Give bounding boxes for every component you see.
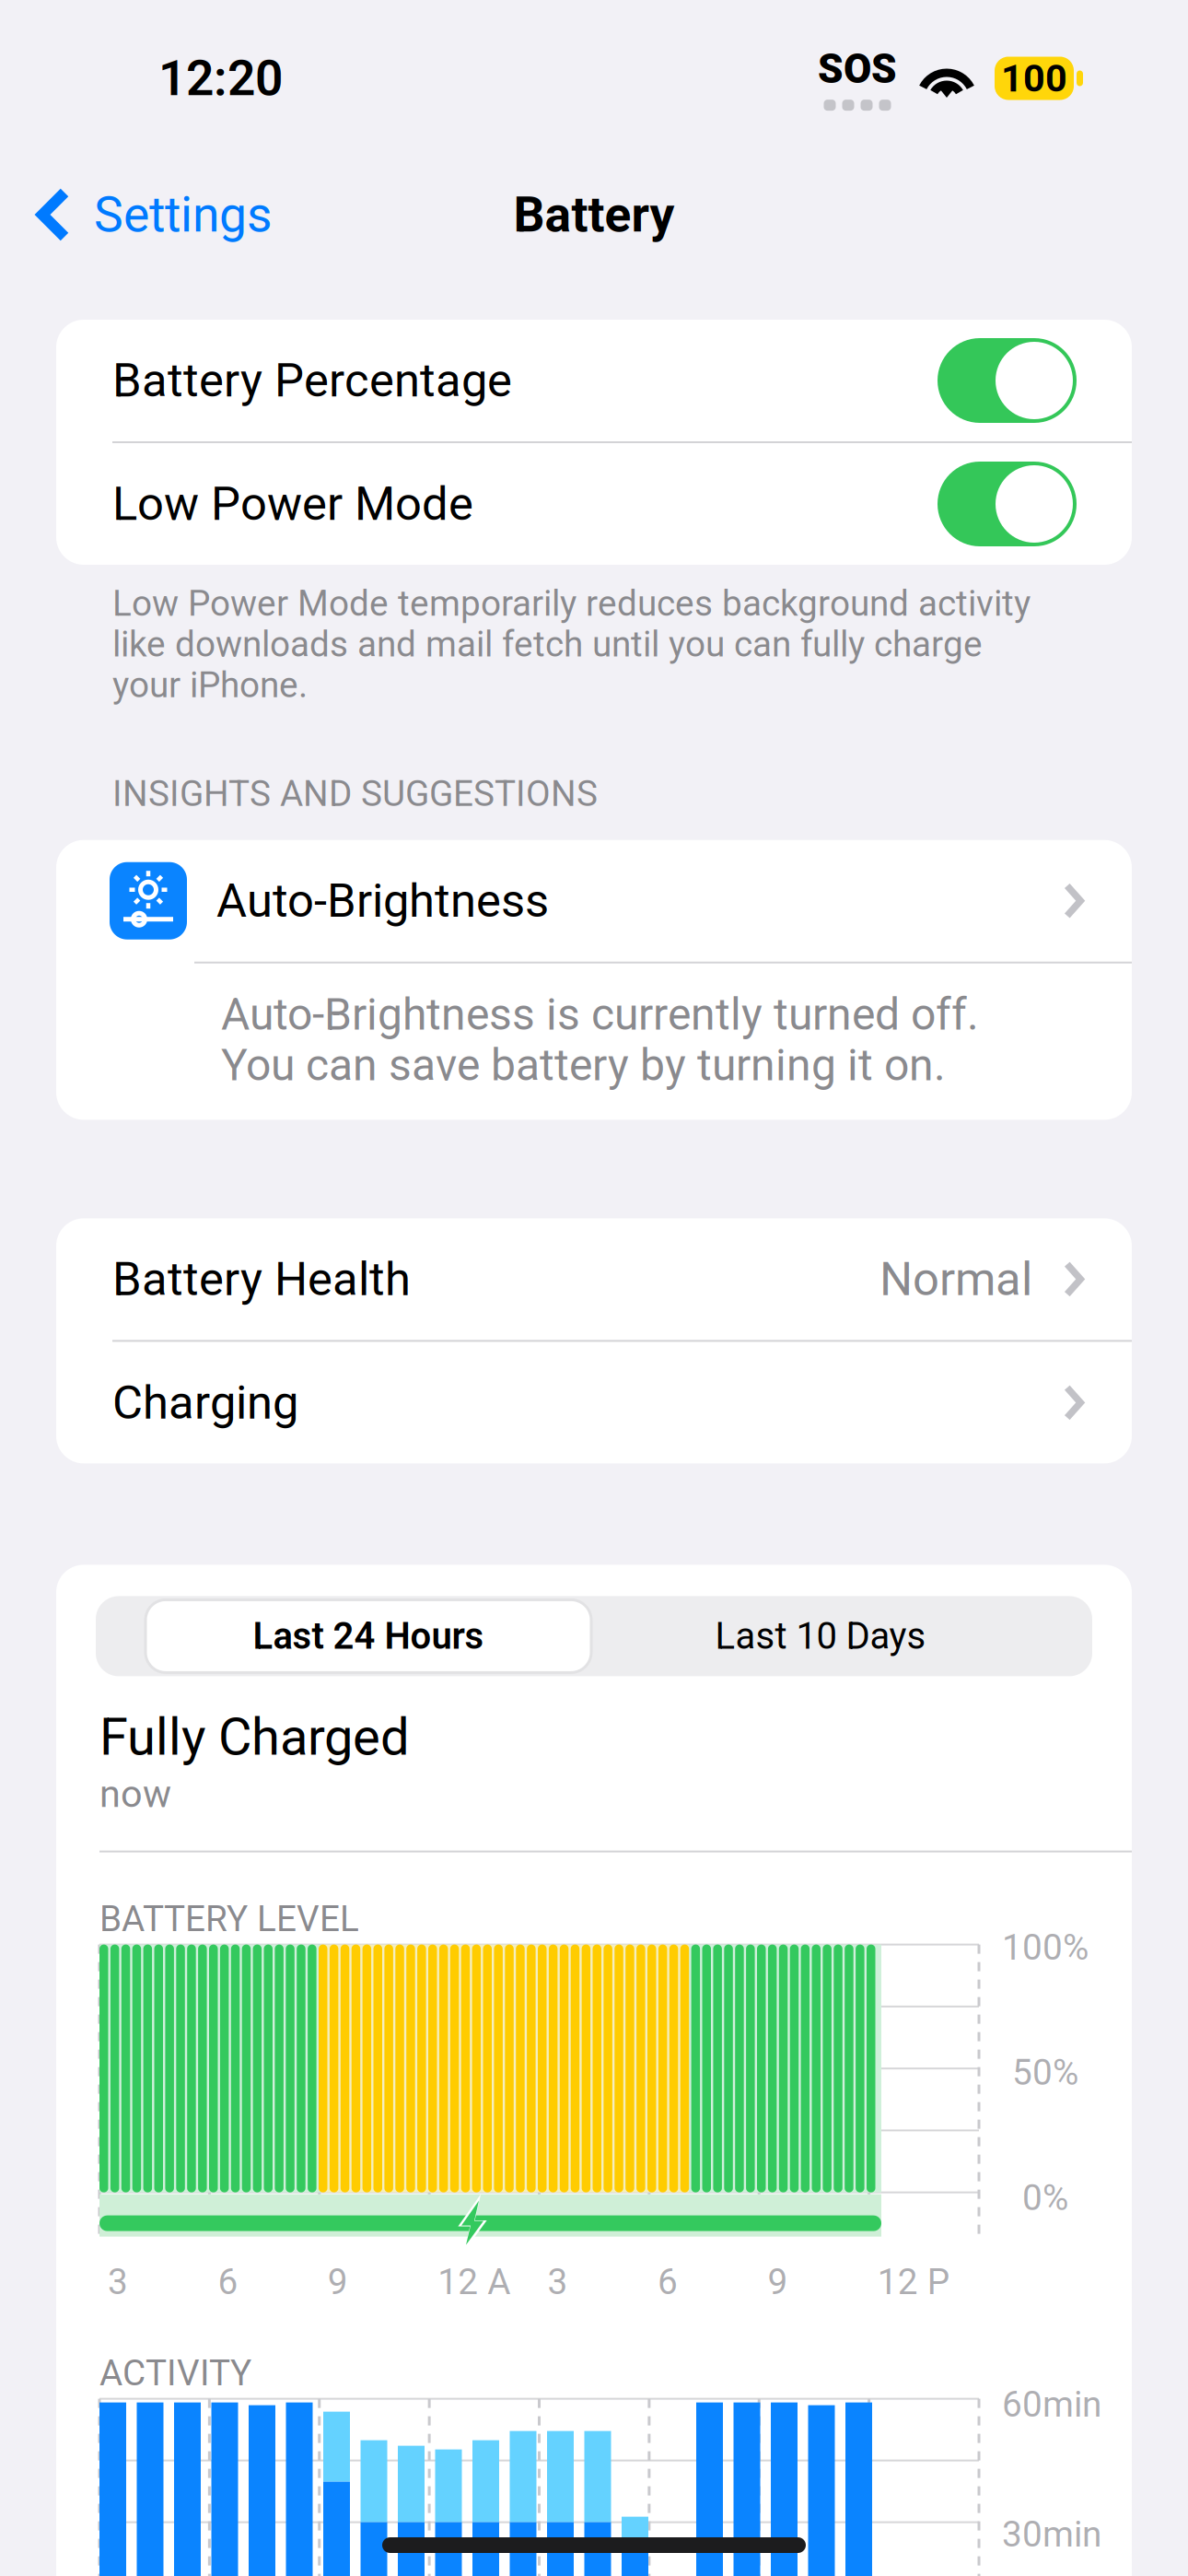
staticText: now (99, 1772, 171, 1816)
staticText: 6 (218, 2261, 238, 2302)
staticText: Battery (513, 187, 675, 243)
button[interactable]: Auto-Brightness (56, 840, 1132, 962)
staticText: 12 A (438, 2261, 510, 2302)
staticText: 12 P (877, 2261, 949, 2302)
button[interactable]: Low Power Mode (938, 462, 1077, 546)
staticText: 3 (548, 2261, 568, 2302)
staticText: INSIGHTS AND SUGGESTIONS (112, 773, 598, 814)
button[interactable]: Battery Health (56, 1218, 1132, 1340)
staticText: BATTERY LEVEL (99, 1898, 359, 1939)
staticText: ACTIVITY (99, 2353, 251, 2393)
staticText: 100% (1002, 1927, 1089, 1968)
staticText: 0% (1022, 2177, 1068, 2218)
staticText: SOS (818, 46, 897, 92)
button[interactable]: Settings (0, 157, 295, 273)
staticText: Auto-Brightness is currently turned off.… (221, 989, 979, 1090)
staticText: 3 (108, 2261, 128, 2302)
staticText: 30min (1002, 2514, 1101, 2555)
button[interactable]: Last 10 Days (595, 1596, 1046, 1676)
button[interactable]: Last 24 Hours (142, 1596, 595, 1676)
staticText: Last 10 Days (715, 1615, 926, 1657)
staticText: Fully Charged (99, 1708, 410, 1767)
staticText: 9 (328, 2261, 348, 2302)
button[interactable]: Battery Percentage (938, 338, 1077, 423)
staticText: Low Power Mode temporarily reduces backg… (112, 583, 1031, 705)
staticText: Battery Percentage (112, 354, 512, 407)
staticText: Last 24 Hours (253, 1615, 484, 1657)
button[interactable]: Charging (56, 1342, 1132, 1463)
staticText: Charging (112, 1376, 298, 1429)
staticText: Normal (879, 1253, 1032, 1306)
staticText: Auto-Brightness (216, 874, 549, 927)
staticText: 60min (1002, 2384, 1101, 2425)
staticText: 9 (768, 2261, 788, 2302)
staticText: Battery Health (112, 1253, 411, 1306)
staticText: 12:20 (158, 50, 283, 106)
staticText: Low Power Mode (112, 477, 473, 531)
staticText: 50% (1012, 2052, 1078, 2093)
staticText: Settings (94, 187, 273, 243)
staticText: 6 (658, 2261, 678, 2302)
staticText: 100 (1001, 57, 1067, 100)
